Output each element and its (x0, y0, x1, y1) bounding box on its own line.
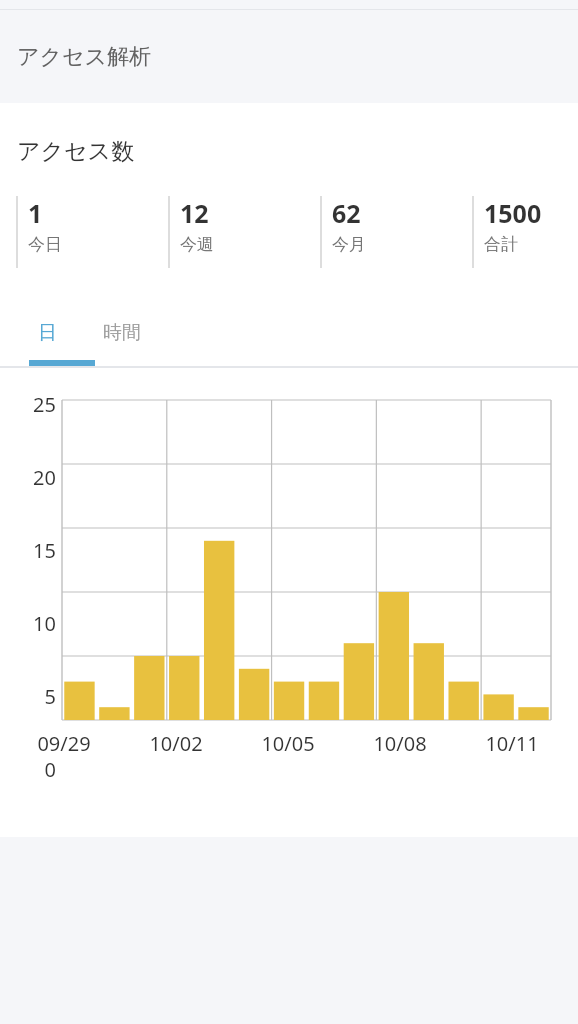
staticText: 15 (22, 537, 56, 564)
staticText: 1500 (484, 196, 542, 230)
staticText: 12 (180, 196, 209, 230)
staticText: 10 (22, 610, 56, 637)
staticText: アクセス解析 (17, 43, 152, 71)
staticText: 時間 (103, 321, 141, 345)
staticText: 1 (28, 196, 43, 230)
button[interactable]: 日 (14, 305, 80, 360)
staticText: 10/11 (485, 730, 539, 757)
staticText: 20 (22, 464, 56, 491)
staticText: 今月 (332, 234, 366, 255)
button[interactable]: 1500 (472, 196, 578, 268)
staticText: 今週 (180, 234, 214, 255)
staticText: 09/29 (37, 730, 91, 757)
staticText: 5 (22, 683, 56, 710)
staticText: 今日 (28, 234, 62, 255)
staticText: 10/08 (373, 730, 427, 757)
staticText: 合計 (484, 234, 518, 255)
button[interactable]: 1 (16, 196, 168, 268)
staticText: 10/02 (149, 730, 203, 757)
button[interactable]: 時間 (80, 305, 164, 360)
staticText: 0 (22, 756, 56, 783)
staticText: 日 (38, 321, 57, 345)
staticText: 10/05 (261, 730, 315, 757)
staticText: アクセス数 (17, 137, 135, 166)
button[interactable]: 12 (168, 196, 320, 268)
staticText: 25 (22, 391, 56, 418)
button[interactable]: 62 (320, 196, 472, 268)
staticText: 62 (332, 196, 361, 230)
